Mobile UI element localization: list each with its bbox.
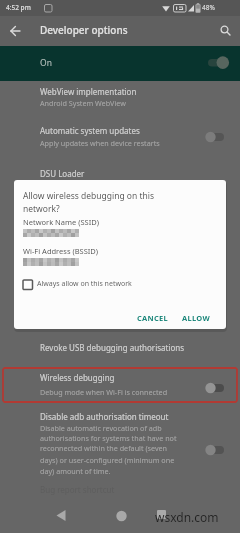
staticText: wsxdn.com <box>155 509 219 525</box>
staticText: Network Name (SSID) <box>23 217 99 227</box>
button[interactable] <box>0 115 240 155</box>
button[interactable] <box>101 503 141 529</box>
staticText: Allow wireless debugging on this <box>23 190 155 202</box>
staticText: DSU Loader <box>40 168 85 179</box>
button[interactable] <box>130 310 174 328</box>
button[interactable] <box>216 20 238 42</box>
staticText: Android System WebView <box>40 98 126 108</box>
staticText: Wireless debugging <box>40 372 115 383</box>
button[interactable] <box>141 503 181 529</box>
button[interactable] <box>41 503 81 529</box>
button[interactable] <box>4 20 26 42</box>
staticText: Automatic system updates <box>40 125 140 136</box>
staticText: network? <box>23 203 60 215</box>
staticText: Debug mode when Wi-Fi is connected <box>40 387 168 397</box>
button[interactable] <box>0 81 240 115</box>
staticText: CANCEL <box>137 313 169 323</box>
staticText: Disable adb authorisation timeout <box>40 411 169 422</box>
staticText: authorisations for systems that have not <box>40 433 177 443</box>
staticText: Wi-Fi Address (BSSID) <box>23 246 99 256</box>
staticText: ALLOW <box>182 313 211 323</box>
staticText: 48% <box>202 3 215 12</box>
staticText: days) or user-configured (minimum one <box>40 455 175 465</box>
staticText: Apply updates when device restarts <box>40 138 160 148</box>
button[interactable] <box>0 334 240 358</box>
staticText: reconnected within the default (seven <box>40 443 168 453</box>
button[interactable] <box>0 46 240 81</box>
button[interactable] <box>0 406 240 486</box>
staticText: 4:52 pm <box>6 3 31 12</box>
staticText: On <box>40 57 52 69</box>
staticText: Disable automatic revocation of adb <box>40 423 162 433</box>
staticText: WebView implementation <box>40 86 137 97</box>
staticText: Always allow on this network <box>37 279 132 289</box>
staticText: Developer options <box>40 23 128 37</box>
staticText: day) amount of time. <box>40 466 111 476</box>
button[interactable] <box>0 155 240 180</box>
staticText: Revoke USB debugging authorisations <box>40 342 185 353</box>
button[interactable] <box>0 368 240 402</box>
button[interactable] <box>176 310 218 328</box>
